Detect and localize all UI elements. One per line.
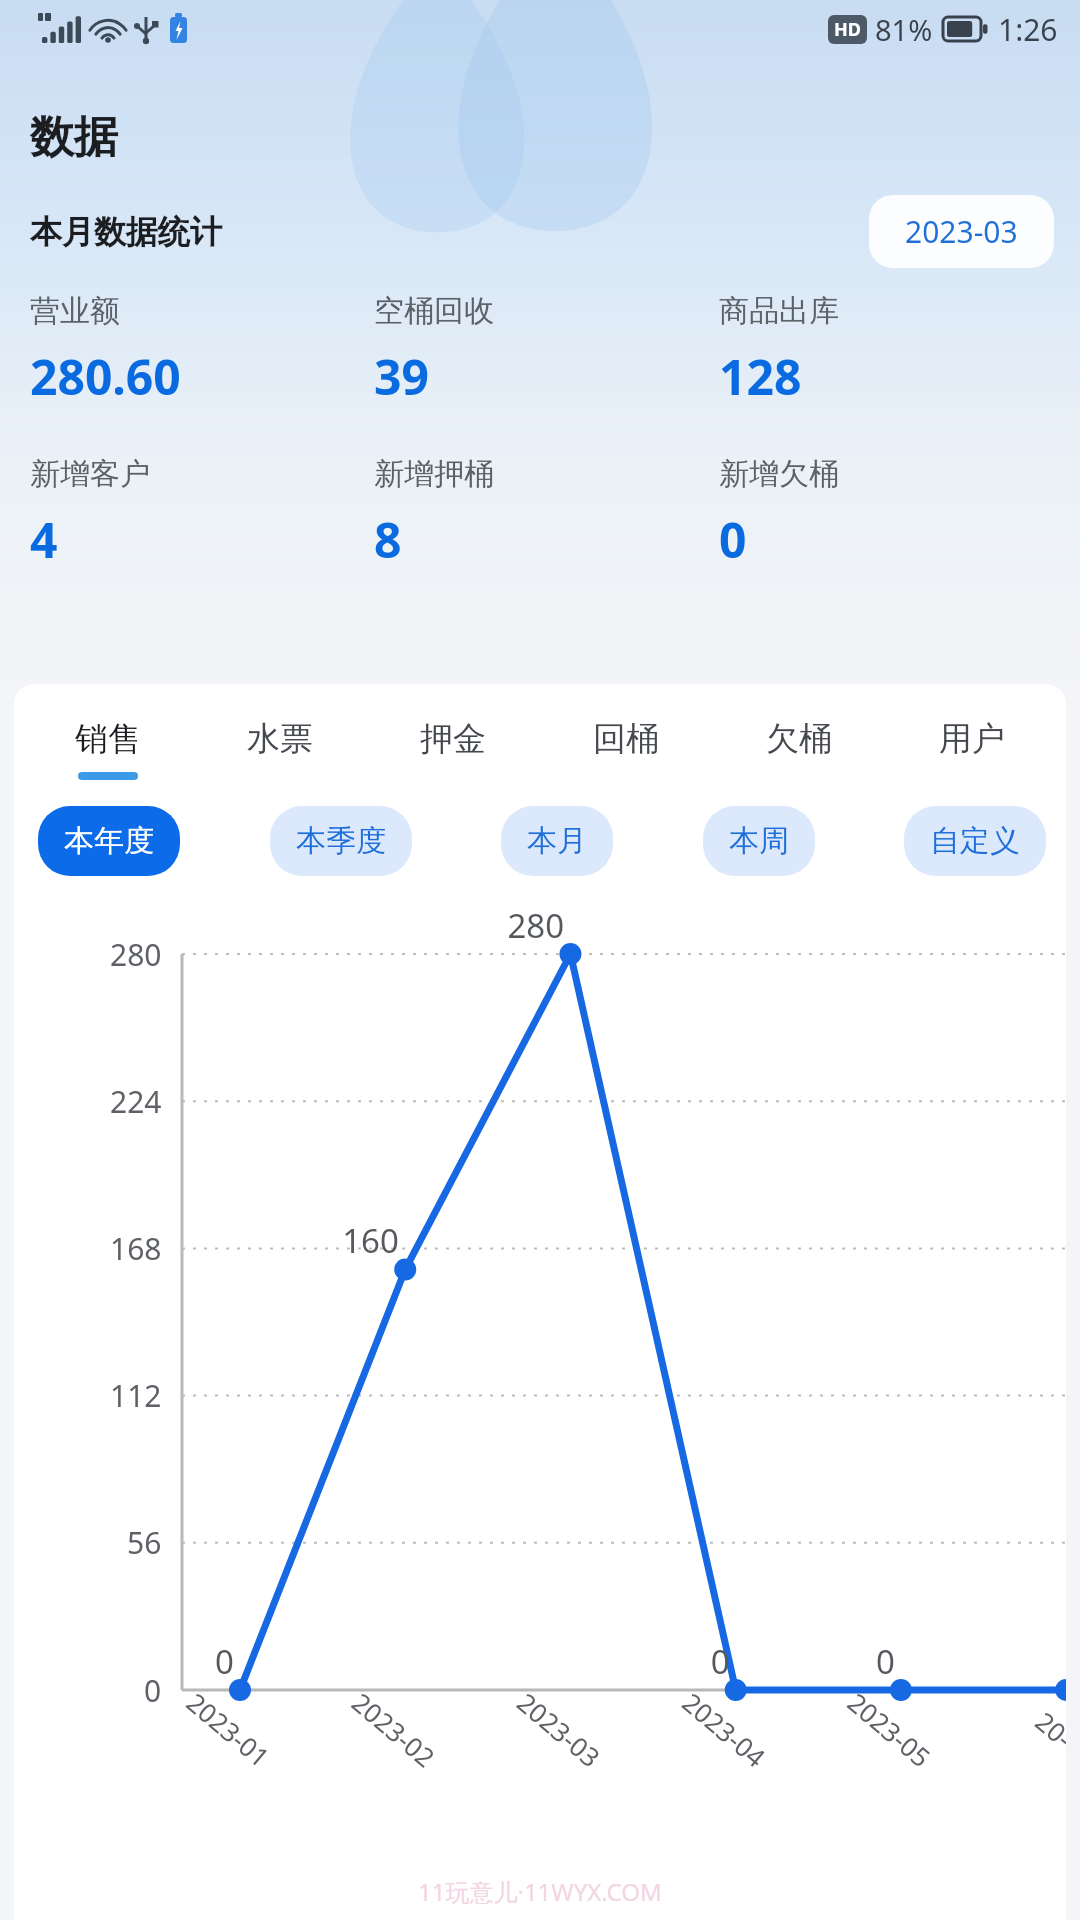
staticText: 用户 (939, 718, 1005, 760)
button[interactable]: 销售 (22, 718, 194, 780)
staticText: 押金 (420, 718, 486, 760)
button[interactable]: 自定义 (904, 806, 1046, 876)
staticText: 水票 (247, 718, 313, 760)
staticText: 本月 (527, 822, 587, 860)
staticText: 数据 (30, 110, 118, 165)
staticText: 8 (374, 507, 402, 572)
staticText: 128 (719, 344, 802, 409)
staticText: 39 (374, 344, 429, 409)
staticText: 280.60 (30, 344, 181, 409)
staticText: 本季度 (296, 822, 386, 860)
button[interactable]: 水票 (194, 718, 366, 780)
button[interactable]: 回桶 (539, 718, 712, 780)
staticText: 81% (875, 10, 933, 49)
staticText: HD (834, 17, 861, 42)
staticText: 0 (719, 507, 747, 572)
staticText: 1:26 (998, 9, 1058, 50)
button[interactable]: 本年度 (38, 806, 180, 876)
staticText: 营业额 (30, 292, 120, 330)
button[interactable]: 本周 (703, 806, 815, 876)
staticText: 本周 (729, 822, 789, 860)
staticText: 欠桶 (766, 718, 832, 760)
button[interactable]: 本月 (501, 806, 613, 876)
staticText: 自定义 (930, 822, 1020, 860)
staticText: 回桶 (593, 718, 659, 760)
staticText: 4 (30, 507, 58, 572)
staticText: 新增客户 (30, 455, 150, 493)
staticText: 商品出库 (719, 292, 839, 330)
staticText: 新增欠桶 (719, 455, 839, 493)
button[interactable]: 欠桶 (712, 718, 885, 780)
button[interactable]: 用户 (885, 718, 1058, 780)
button[interactable]: 押金 (366, 718, 539, 780)
staticText: 新增押桶 (374, 455, 494, 493)
staticText: 2023-03 (905, 211, 1018, 252)
staticText: 本年度 (64, 822, 154, 860)
staticText: 本月数据统计 (30, 212, 222, 252)
button[interactable]: 本季度 (270, 806, 412, 876)
staticText: 空桶回收 (374, 292, 494, 330)
staticText: 销售 (75, 718, 141, 760)
button[interactable]: 2023-03 (869, 195, 1054, 268)
